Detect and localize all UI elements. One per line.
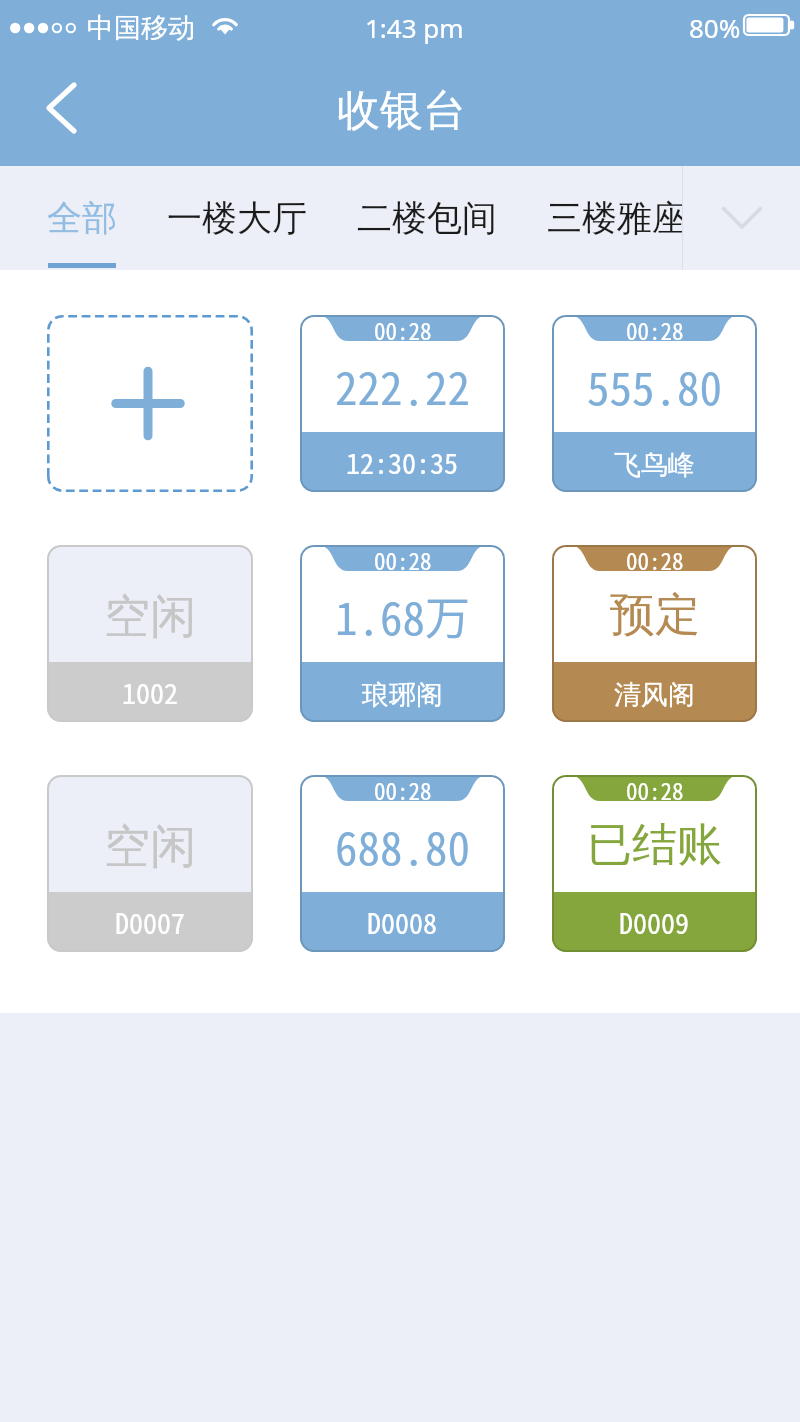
button[interactable]: 00:28 — [552, 545, 757, 722]
staticText: 1:43 pm — [365, 10, 464, 45]
button[interactable]: 00:28 — [300, 545, 505, 722]
staticText: 一楼大厅 — [167, 196, 307, 240]
staticText: 全部 — [47, 196, 117, 240]
button[interactable]: 一楼大厅 — [142, 166, 332, 270]
button[interactable]: 空闲 — [47, 545, 253, 722]
button[interactable]: Back — [22, 75, 82, 147]
staticText: 1.68万 — [335, 583, 471, 648]
staticText: 清风阁 — [614, 678, 695, 712]
staticText: 二楼包间 — [357, 196, 497, 240]
staticText: 琅琊阁 — [362, 678, 443, 712]
button[interactable]: Expand tab list — [682, 166, 800, 270]
button[interactable]: 全部 — [22, 166, 142, 270]
staticText: 00:28 — [374, 545, 432, 572]
staticText: 中国移动 — [87, 11, 195, 45]
staticText: 空闲 — [104, 588, 196, 646]
button[interactable]: 二楼包间 — [332, 166, 522, 270]
staticText: 00:28 — [374, 775, 432, 802]
staticText: 80% — [689, 10, 741, 45]
button[interactable]: 00:28 — [300, 775, 505, 952]
button[interactable]: 三楼雅座 — [522, 166, 712, 270]
button[interactable]: 空闲 — [47, 775, 253, 952]
staticText: 00:28 — [626, 315, 684, 342]
staticText: 555.80 — [587, 353, 723, 418]
staticText: D0007 — [115, 902, 186, 943]
staticText: 00:28 — [374, 315, 432, 342]
staticText: 已结账 — [587, 817, 722, 874]
staticText: 飞鸟峰 — [614, 448, 695, 482]
staticText: 收银台 — [337, 84, 466, 138]
staticText: D0008 — [367, 902, 438, 943]
staticText: 三楼雅座 — [547, 196, 687, 240]
staticText: 00:28 — [626, 545, 684, 572]
staticText: 空闲 — [104, 818, 196, 876]
staticText: 00:28 — [626, 775, 684, 802]
button[interactable]: 00:28 — [552, 315, 757, 492]
staticText: 1002 — [122, 672, 179, 713]
staticText: 222.22 — [335, 353, 471, 418]
staticText: D0009 — [619, 902, 690, 943]
staticText: 12:30:35 — [346, 442, 459, 483]
staticText: 预定 — [610, 587, 700, 644]
button[interactable]: 00:28 — [300, 315, 505, 492]
staticText: 688.80 — [335, 813, 471, 878]
button[interactable]: Add table — [47, 315, 253, 492]
button[interactable]: 00:28 — [552, 775, 757, 952]
